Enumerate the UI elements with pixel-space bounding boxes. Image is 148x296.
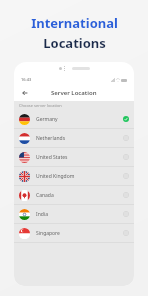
button[interactable]: Singapore <box>14 224 134 242</box>
staticText: United States <box>36 154 68 161</box>
button[interactable]: Back <box>19 87 31 99</box>
staticText: Canada <box>36 192 54 199</box>
staticText: Netherlands <box>36 135 66 142</box>
staticText: Singapore <box>36 230 60 237</box>
staticText: India <box>36 211 48 218</box>
staticText: United Kingdom <box>36 173 75 180</box>
staticText: Choose server location <box>19 103 62 108</box>
staticText: Locations <box>43 34 106 52</box>
staticText: International <box>31 14 118 32</box>
button[interactable]: United States <box>14 148 134 166</box>
staticText: Germany <box>36 116 58 123</box>
button[interactable]: Canada <box>14 186 134 204</box>
button[interactable]: Netherlands <box>14 129 134 147</box>
staticText: 16:43 <box>21 77 32 82</box>
staticText: Server Location <box>51 89 97 97</box>
button[interactable]: India <box>14 205 134 223</box>
button[interactable]: United Kingdom <box>14 167 134 185</box>
button[interactable]: Germany <box>14 110 134 128</box>
